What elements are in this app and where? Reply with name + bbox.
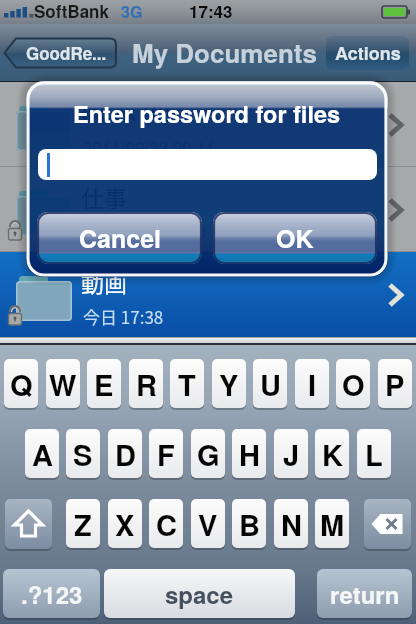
staticText: S xyxy=(73,433,93,475)
button[interactable]: R xyxy=(129,359,163,408)
staticText: Y xyxy=(219,363,239,405)
staticText: N xyxy=(281,503,302,545)
staticText: G xyxy=(197,433,220,475)
button[interactable]: Y xyxy=(212,359,246,408)
staticText: 今日 17:38 xyxy=(83,304,164,329)
staticText: Enter password for files xyxy=(73,97,341,131)
button[interactable]: Backspace xyxy=(364,499,411,549)
button[interactable]: GoodRe... xyxy=(3,37,117,69)
button[interactable]: Inbox (0) xyxy=(0,82,416,167)
staticText: D xyxy=(115,433,136,475)
button[interactable]: F xyxy=(149,429,183,478)
staticText: 2011/07/16 5:30 xyxy=(83,219,206,243)
staticText: W xyxy=(49,363,77,405)
staticText: Actions xyxy=(335,40,401,66)
staticText: 17:43 xyxy=(189,0,233,23)
button[interactable]: J xyxy=(274,429,308,478)
staticText: R xyxy=(136,363,157,405)
staticText: O xyxy=(342,363,365,405)
button[interactable]: G xyxy=(191,429,225,478)
button[interactable]: 仕事 xyxy=(0,167,416,252)
staticText: space xyxy=(165,577,234,611)
staticText: Inbox (0) xyxy=(81,95,172,128)
staticText: I xyxy=(308,363,317,405)
button[interactable]: space xyxy=(104,569,295,618)
button[interactable]: Z xyxy=(66,499,100,548)
staticText: X xyxy=(115,503,135,545)
staticText: SoftBank xyxy=(34,0,109,23)
staticText: 3G xyxy=(121,0,143,23)
staticText: U xyxy=(260,363,281,405)
button[interactable]: S xyxy=(66,429,100,478)
button[interactable]: T xyxy=(170,359,204,408)
staticText: H xyxy=(239,433,260,475)
staticText: Z xyxy=(74,503,92,545)
button[interactable]: E xyxy=(87,359,121,408)
button[interactable]: B xyxy=(232,499,266,548)
staticText: F xyxy=(157,433,175,475)
button[interactable]: W xyxy=(46,359,80,408)
button[interactable]: return xyxy=(317,569,412,618)
button[interactable]: X xyxy=(108,499,142,548)
staticText: B xyxy=(239,503,260,545)
button[interactable] xyxy=(38,149,377,180)
button[interactable]: M xyxy=(315,499,349,548)
staticText: E xyxy=(94,363,114,405)
staticText: M xyxy=(320,503,345,545)
staticText: K xyxy=(322,433,343,475)
button[interactable]: P xyxy=(378,359,412,408)
button[interactable]: 動画 xyxy=(0,252,416,337)
staticText: My Documents xyxy=(132,34,317,71)
button[interactable]: U xyxy=(253,359,287,408)
staticText: A xyxy=(32,433,53,475)
button[interactable]: V xyxy=(191,499,225,548)
staticText: 動画 xyxy=(81,265,127,298)
button[interactable]: Cancel xyxy=(37,212,202,264)
button[interactable]: A xyxy=(25,429,59,478)
staticText: L xyxy=(365,433,383,475)
button[interactable]: O xyxy=(336,359,370,408)
staticText: P xyxy=(385,363,405,405)
staticText: .?123 xyxy=(21,577,83,611)
staticText: return xyxy=(330,577,400,611)
staticText: C xyxy=(156,503,177,545)
staticText: V xyxy=(198,503,218,545)
button[interactable]: D xyxy=(108,429,142,478)
staticText: T xyxy=(178,363,196,405)
button[interactable]: .?123 xyxy=(3,569,100,618)
button[interactable]: Shift xyxy=(5,499,52,549)
staticText: 仕事 xyxy=(81,180,127,213)
button[interactable]: L xyxy=(357,429,391,478)
button[interactable]: OK xyxy=(213,212,377,264)
button[interactable]: I xyxy=(295,359,329,408)
button[interactable]: C xyxy=(149,499,183,548)
staticText: J xyxy=(283,433,300,475)
button[interactable]: K xyxy=(315,429,349,478)
staticText: 2011/09/22 20:11 xyxy=(83,134,216,158)
button[interactable]: N xyxy=(274,499,308,548)
staticText: OK xyxy=(276,220,314,256)
button[interactable]: Q xyxy=(4,359,38,408)
staticText: Cancel xyxy=(79,220,161,256)
button[interactable]: Actions xyxy=(326,36,409,70)
button[interactable]: H xyxy=(232,429,266,478)
staticText: Q xyxy=(10,363,33,405)
staticText: GoodRe... xyxy=(26,41,107,65)
